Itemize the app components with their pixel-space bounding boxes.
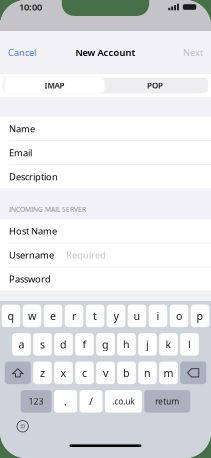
staticText: o: [176, 309, 182, 323]
staticText: New Account: [75, 46, 135, 59]
button[interactable]: y: [107, 305, 125, 327]
button[interactable]: f: [75, 333, 94, 356]
staticText: y: [113, 309, 118, 323]
button[interactable]: w: [23, 305, 41, 327]
button[interactable]: b: [117, 362, 136, 384]
staticText: e: [50, 309, 56, 323]
button[interactable]: l: [180, 333, 199, 356]
button[interactable]: Next: [177, 38, 211, 67]
staticText: u: [133, 309, 140, 323]
button[interactable]: Shift: [5, 362, 31, 384]
staticText: q: [7, 309, 14, 323]
button[interactable]: .co.uk: [105, 390, 142, 413]
staticText: w: [28, 309, 36, 323]
staticText: 10:00: [19, 1, 42, 13]
button[interactable]: t: [86, 305, 104, 327]
staticText: g: [102, 337, 109, 351]
button[interactable]: g: [96, 333, 115, 356]
button[interactable]: p: [191, 305, 209, 327]
button[interactable]: n: [138, 362, 157, 384]
staticText: Username: [9, 249, 54, 261]
staticText: h: [123, 337, 130, 351]
button[interactable]: /: [79, 390, 102, 413]
staticText: f: [82, 337, 86, 351]
staticText: s: [40, 337, 45, 351]
staticText: k: [165, 337, 171, 351]
staticText: b: [123, 366, 130, 380]
button[interactable]: r: [65, 305, 83, 327]
button[interactable]: q: [2, 305, 20, 327]
staticText: Name: [9, 123, 35, 135]
staticText: j: [146, 337, 149, 351]
button[interactable]: Cancel: [0, 38, 42, 67]
button[interactable]: j: [138, 333, 157, 356]
staticText: Required: [66, 249, 106, 261]
staticText: INCOMING MAIL SERVER: [9, 205, 86, 214]
button[interactable]: .: [54, 390, 77, 413]
button[interactable]: k: [159, 333, 178, 356]
button[interactable]: i: [149, 305, 167, 327]
button[interactable]: IMAP: [4, 78, 105, 93]
button[interactable]: u: [128, 305, 146, 327]
button[interactable]: s: [33, 333, 52, 356]
staticText: Next: [183, 46, 203, 59]
staticText: i: [156, 309, 159, 323]
button[interactable]: x: [54, 362, 73, 384]
staticText: IMAP: [44, 80, 64, 91]
staticText: Password: [9, 273, 51, 285]
button[interactable]: d: [54, 333, 73, 356]
staticText: .: [64, 394, 67, 408]
button[interactable]: e: [44, 305, 62, 327]
staticText: l: [188, 337, 191, 351]
staticText: t: [93, 309, 97, 323]
button[interactable]: a: [12, 333, 31, 356]
staticText: Host Name: [9, 225, 57, 237]
staticText: return: [155, 396, 179, 407]
staticText: c: [82, 366, 87, 380]
staticText: /: [89, 394, 93, 408]
staticText: d: [60, 337, 67, 351]
button[interactable]: c: [75, 362, 94, 384]
staticText: :D: [20, 423, 25, 430]
button[interactable]: z: [33, 362, 52, 384]
staticText: x: [60, 366, 66, 380]
button[interactable]: 123: [21, 390, 52, 413]
button[interactable]: POP: [105, 78, 205, 93]
button[interactable]: o: [170, 305, 188, 327]
staticText: 123: [29, 396, 44, 407]
staticText: m: [163, 366, 173, 380]
staticText: POP: [147, 80, 163, 91]
button[interactable]: v: [96, 362, 115, 384]
staticText: a: [18, 337, 24, 351]
button[interactable]: m: [159, 362, 178, 384]
staticText: p: [196, 309, 203, 323]
staticText: r: [72, 309, 76, 323]
button[interactable]: Emoji keyboard: [17, 421, 28, 432]
staticText: z: [40, 366, 45, 380]
staticText: n: [144, 366, 151, 380]
staticText: v: [103, 366, 108, 380]
button[interactable]: h: [117, 333, 136, 356]
staticText: Cancel: [8, 46, 36, 59]
button[interactable]: Delete: [180, 362, 206, 384]
staticText: .co.uk: [112, 396, 134, 407]
button[interactable]: return: [144, 390, 190, 413]
staticText: Email: [9, 147, 32, 159]
staticText: Description: [9, 171, 58, 183]
